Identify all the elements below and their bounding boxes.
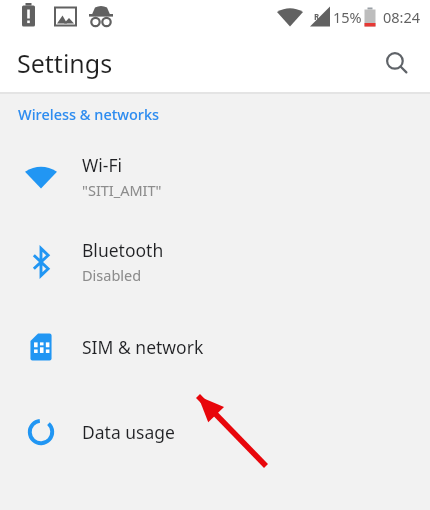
staticText: SIM & network xyxy=(82,335,204,359)
staticText: Bluetooth xyxy=(82,238,164,262)
button[interactable]: Wi-Fi xyxy=(0,134,430,219)
staticText: R xyxy=(314,11,320,22)
staticText: 15% xyxy=(333,7,362,27)
staticText: Data usage xyxy=(82,420,175,444)
staticText: Wi-Fi xyxy=(82,153,123,177)
staticText: 08:24 xyxy=(383,7,421,27)
button[interactable]: Bluetooth xyxy=(0,219,430,304)
staticText: "SITI_AMIT" xyxy=(82,180,162,200)
button[interactable]: Data usage xyxy=(0,389,430,474)
staticText: Wireless & networks xyxy=(18,104,160,124)
button[interactable]: SIM & network xyxy=(0,304,430,389)
staticText: Disabled xyxy=(82,265,142,285)
button[interactable]: Search xyxy=(375,41,419,85)
staticText: Settings xyxy=(17,46,113,80)
